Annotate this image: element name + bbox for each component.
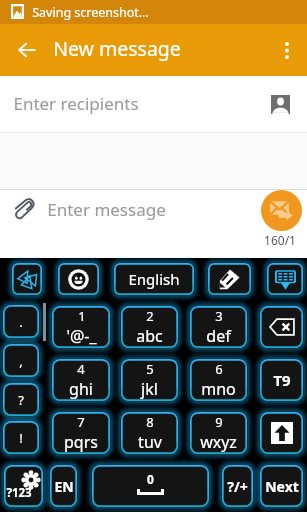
staticText: ! bbox=[19, 429, 23, 447]
button[interactable]: 0 bbox=[92, 465, 209, 507]
staticText: Saving screenshot… bbox=[32, 4, 149, 21]
staticText: wxyz bbox=[200, 431, 237, 453]
button[interactable]: 2 bbox=[121, 306, 178, 348]
button[interactable]: Add contact bbox=[266, 90, 294, 118]
staticText: 6 bbox=[215, 360, 223, 378]
button[interactable]: EN bbox=[50, 465, 77, 507]
staticText: mno bbox=[201, 378, 236, 400]
button[interactable]: . bbox=[3, 305, 39, 338]
staticText: , bbox=[19, 352, 23, 370]
staticText: Enter recipients bbox=[13, 92, 139, 115]
staticText: ? bbox=[18, 391, 24, 409]
staticText: New message bbox=[53, 35, 181, 62]
button[interactable]: ! bbox=[3, 421, 39, 454]
button[interactable]: T9 bbox=[260, 359, 303, 401]
button[interactable]: ?123 bbox=[4, 465, 43, 507]
staticText: tuv bbox=[138, 431, 162, 453]
button[interactable]: More options bbox=[267, 24, 307, 76]
button[interactable]: Back bbox=[5, 24, 49, 76]
button[interactable]: Send bbox=[261, 190, 302, 231]
staticText: 1 bbox=[78, 307, 86, 325]
staticText: abc bbox=[136, 325, 163, 347]
button[interactable] bbox=[260, 412, 303, 454]
staticText: Enter message bbox=[47, 198, 166, 221]
button[interactable]: 5 bbox=[121, 359, 178, 401]
staticText: 0 bbox=[147, 471, 154, 487]
staticText: T9 bbox=[273, 370, 291, 390]
button[interactable]: English bbox=[114, 263, 194, 295]
button[interactable]: Next bbox=[260, 465, 303, 507]
staticText: 160/1 bbox=[264, 232, 296, 248]
button[interactable]: 3 bbox=[190, 306, 247, 348]
staticText: ?/+ bbox=[227, 477, 248, 496]
staticText: 8 bbox=[146, 413, 154, 431]
staticText: pqrs bbox=[64, 431, 98, 453]
button[interactable] bbox=[267, 263, 303, 295]
button[interactable]: 6 bbox=[190, 359, 247, 401]
staticText: '@-_ bbox=[66, 325, 97, 347]
button[interactable] bbox=[260, 306, 303, 348]
staticText: 4 bbox=[77, 360, 85, 378]
button[interactable]: 9 bbox=[190, 412, 247, 454]
staticText: Next bbox=[265, 477, 299, 496]
button[interactable]: 8 bbox=[121, 412, 178, 454]
button[interactable] bbox=[12, 263, 42, 295]
button[interactable] bbox=[208, 263, 251, 295]
staticText: . bbox=[19, 313, 23, 331]
button[interactable]: 4 bbox=[52, 359, 110, 401]
button[interactable]: Attach bbox=[13, 198, 35, 220]
staticText: ghi bbox=[69, 378, 93, 400]
button[interactable]: , bbox=[3, 344, 39, 377]
button[interactable]: 7 bbox=[52, 412, 110, 454]
staticText: English bbox=[128, 269, 180, 289]
staticText: 2 bbox=[146, 307, 154, 325]
staticText: 5 bbox=[146, 360, 154, 378]
button[interactable]: ?/+ bbox=[222, 465, 253, 507]
button[interactable] bbox=[58, 263, 99, 295]
staticText: 3 bbox=[215, 307, 223, 325]
staticText: EN bbox=[54, 477, 74, 496]
staticText: 7 bbox=[77, 413, 85, 431]
staticText: jkl bbox=[141, 378, 158, 400]
button[interactable]: ? bbox=[3, 383, 39, 416]
staticText: ?123 bbox=[6, 485, 32, 501]
button[interactable]: 1 bbox=[52, 306, 110, 348]
staticText: def bbox=[206, 325, 231, 347]
staticText: 9 bbox=[215, 413, 223, 431]
